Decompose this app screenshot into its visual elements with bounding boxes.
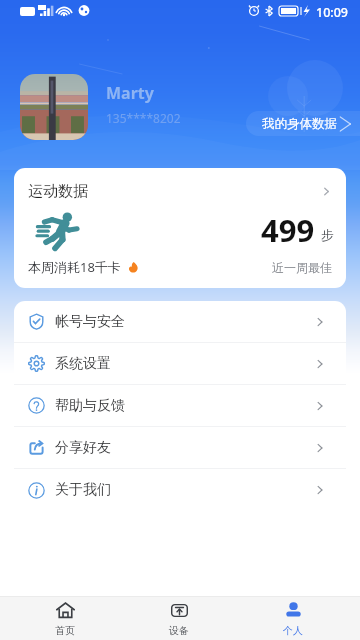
button[interactable]: Avatar xyxy=(20,74,88,140)
staticText: 设备 xyxy=(169,624,189,637)
staticText: 499 xyxy=(261,209,315,251)
button[interactable]: 个人 xyxy=(236,597,350,640)
staticText: 个人 xyxy=(283,624,303,637)
button[interactable]: 系统设置 xyxy=(14,343,346,384)
staticText: 帮助与反馈 xyxy=(55,397,125,415)
staticText: 我的身体数据 xyxy=(262,116,337,132)
staticText: 分享好友 xyxy=(55,439,111,457)
staticText: 步 xyxy=(321,227,334,243)
button[interactable]: 帮助与反馈 xyxy=(14,385,346,426)
button[interactable]: 运动数据 xyxy=(14,168,346,288)
staticText: 10:09 xyxy=(316,4,349,21)
staticText: 近一周最佳 xyxy=(272,260,332,275)
staticText: 关于我们 xyxy=(55,481,111,499)
button[interactable]: 我的身体数据 xyxy=(246,111,360,136)
staticText: 帐号与安全 xyxy=(55,313,125,331)
staticText: 首页 xyxy=(55,624,75,637)
button[interactable]: 首页 xyxy=(8,597,122,640)
button[interactable]: 分享好友 xyxy=(14,427,346,468)
staticText: Marty xyxy=(106,82,154,104)
staticText: 运动数据 xyxy=(28,182,88,201)
button[interactable]: 关于我们 xyxy=(14,469,346,511)
button[interactable]: 设备 xyxy=(122,597,236,640)
button[interactable]: 帐号与安全 xyxy=(14,301,346,342)
staticText: 135****8202 xyxy=(106,110,181,126)
staticText: 本周消耗18千卡 xyxy=(28,258,121,276)
staticText: 系统设置 xyxy=(55,355,111,373)
